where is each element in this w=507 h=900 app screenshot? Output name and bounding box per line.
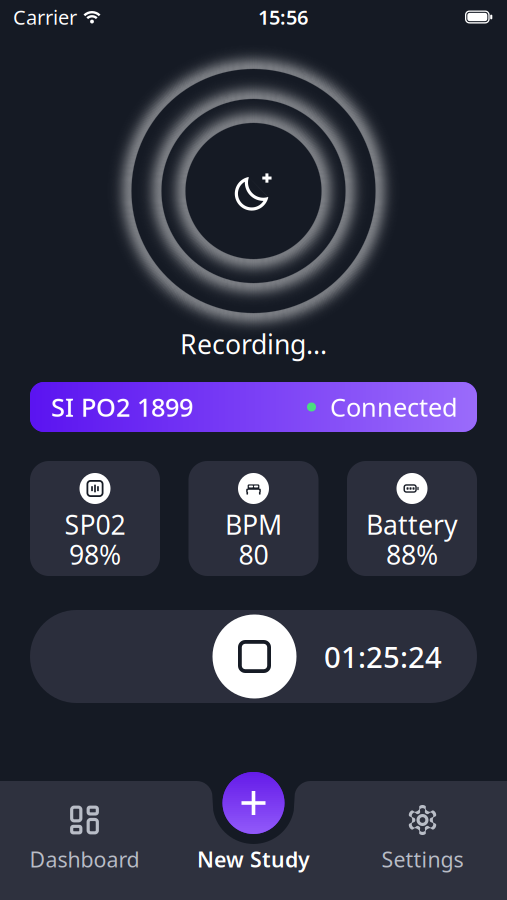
button[interactable]: Stop recording xyxy=(212,610,296,703)
staticText: Dashboard xyxy=(29,845,139,873)
staticText: New Study xyxy=(197,845,310,873)
staticText: BPM xyxy=(225,507,282,542)
staticText: Connected xyxy=(316,390,458,424)
staticText: 15:56 xyxy=(258,4,308,30)
button[interactable]: SI PO2 1899 xyxy=(30,382,477,432)
button[interactable]: New Study xyxy=(169,781,338,900)
staticText: Settings xyxy=(381,845,463,873)
staticText: Carrier xyxy=(13,4,77,30)
staticText: Recording... xyxy=(180,326,327,362)
staticText: 01:25:24 xyxy=(324,637,442,676)
staticText: 80 xyxy=(238,537,268,572)
button[interactable]: Settings xyxy=(338,781,507,900)
button[interactable]: Dashboard xyxy=(0,781,169,900)
staticText: SP02 xyxy=(64,507,125,542)
staticText: 98% xyxy=(69,537,121,572)
staticText: Battery xyxy=(366,507,458,542)
staticText: SI PO2 1899 xyxy=(51,390,193,424)
button[interactable]: New Study xyxy=(212,762,294,844)
staticText: 88% xyxy=(386,537,438,572)
